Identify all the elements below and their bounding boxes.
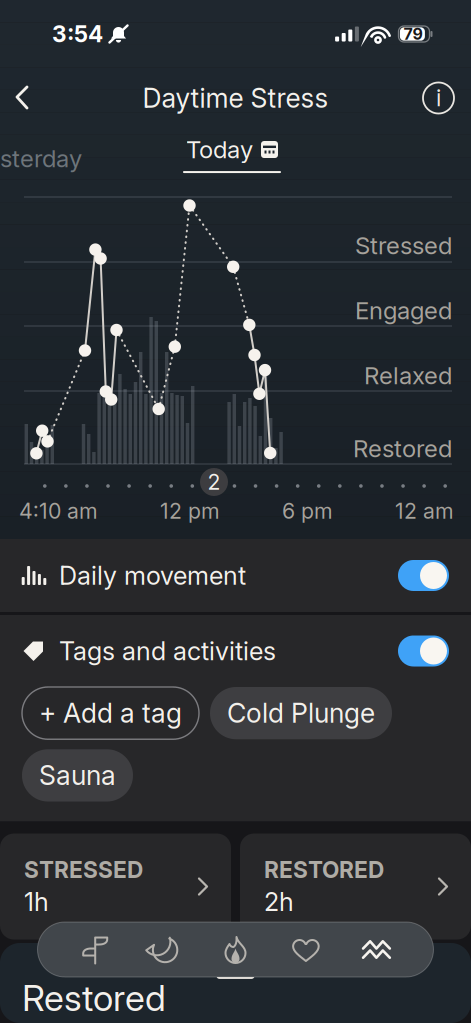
staticText: + Add a tag [39,697,182,729]
staticText: Engaged [355,296,452,325]
staticText: 6 pm [282,498,333,524]
button[interactable]: RESTORED [240,833,471,939]
button[interactable]: Heart [271,922,341,977]
staticText: Stressed [355,231,452,260]
staticText: sterday [0,144,82,173]
staticText: 2 [207,469,220,495]
staticText: 4:10 am [19,498,98,524]
staticText: Relaxed [364,361,452,390]
staticText: Restored [353,434,452,463]
button[interactable]: Today [183,135,281,173]
button[interactable]: Energy [200,922,271,977]
staticText: Sauna [39,759,116,792]
staticText: 79 [403,24,422,44]
staticText: STRESSED [24,856,143,883]
staticText: 3:54 [52,20,103,48]
staticText: 2h [264,886,294,917]
button[interactable]: + Add a tag [22,687,199,739]
staticText: Restored [22,976,166,1020]
button[interactable]: Mind [59,922,130,977]
button[interactable]: Stress [341,922,411,977]
staticText: Tags and activities [59,636,276,666]
button[interactable]: Sleep [130,922,200,977]
staticText: i [436,84,441,112]
button[interactable]: Cold Plunge [210,687,392,739]
button[interactable]: Daily movement [0,539,471,612]
button[interactable]: Sauna [22,749,133,802]
staticText: 12 am [395,498,454,524]
button[interactable]: STRESSED [0,833,231,939]
button[interactable]: Back [4,76,41,120]
button[interactable]: Information [415,74,462,121]
staticText: 12 pm [160,498,220,524]
staticText: Cold Plunge [227,697,375,729]
staticText: 1h [24,886,49,917]
staticText: Daily movement [59,560,246,591]
staticText: RESTORED [264,856,384,883]
button[interactable]: Yesterday [0,135,94,182]
staticText: Daytime Stress [142,82,328,114]
staticText: Today [186,135,253,164]
